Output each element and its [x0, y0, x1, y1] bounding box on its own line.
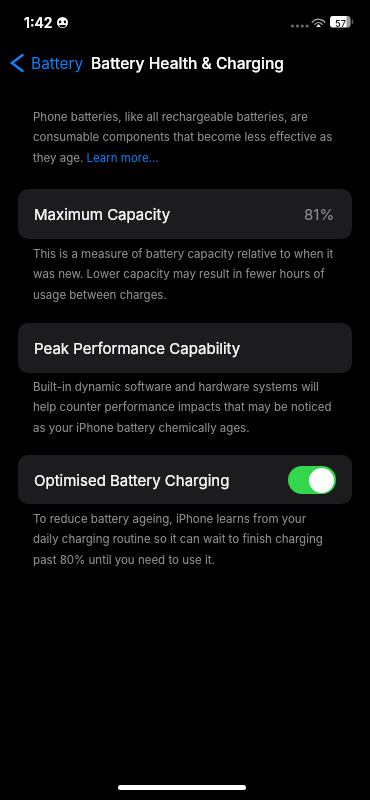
button[interactable]: Back [10, 50, 84, 76]
button[interactable]: Optimised Battery Charging toggle [288, 466, 336, 494]
staticText: To reduce battery ageing, iPhone learns … [33, 512, 334, 567]
staticText: 1:42 [24, 14, 53, 31]
other: Cellular signal [291, 22, 309, 30]
staticText: This is a measure of battery capacity re… [33, 247, 334, 302]
other: Back [10, 54, 24, 72]
other: Wi-Fi [312, 16, 325, 28]
staticText: Battery [31, 54, 84, 73]
button[interactable]: Optimised Battery Charging [18, 455, 352, 504]
staticText: Battery Health & Charging [91, 54, 284, 73]
staticText: Optimised Battery Charging [34, 471, 230, 489]
button[interactable]: Peak Performance Capability [18, 323, 352, 373]
staticText: Built-in dynamic software and hardware s… [33, 380, 334, 435]
staticText: Maximum Capacity [34, 205, 171, 223]
staticText: Peak Performance Capability [34, 339, 241, 357]
staticText: 57 [335, 18, 346, 29]
button[interactable]: Maximum Capacity [18, 189, 352, 239]
other: Battery 57 percent [330, 16, 355, 28]
staticText: 81% [304, 205, 335, 223]
staticText: Phone batteries, like all rechargeable b… [33, 110, 334, 165]
